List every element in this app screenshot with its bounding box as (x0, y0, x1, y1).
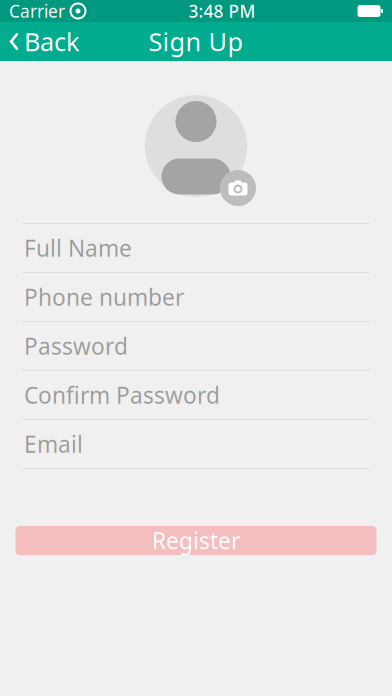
staticText: 3:48 PM (188, 0, 255, 22)
staticText: Email (24, 429, 83, 459)
staticText: Carrier (9, 0, 65, 22)
staticText: Confirm Password (24, 380, 220, 410)
button[interactable]: Email (0, 420, 392, 468)
staticText: Phone number (24, 282, 184, 312)
button[interactable]: Full Name (0, 224, 392, 272)
button[interactable]: Register (15, 526, 376, 555)
staticText (65, 0, 70, 22)
button[interactable]: Password (0, 322, 392, 370)
staticText: Register (152, 525, 240, 555)
button[interactable]: Change profile photo (133, 83, 259, 209)
staticText: Sign Up (148, 25, 243, 58)
button[interactable]: Confirm Password (0, 371, 392, 419)
staticText: Back (24, 25, 80, 58)
button[interactable]: Phone number (0, 273, 392, 321)
staticText: Password (24, 331, 128, 361)
staticText: Full Name (24, 233, 132, 263)
button[interactable]: Back (0, 19, 90, 64)
